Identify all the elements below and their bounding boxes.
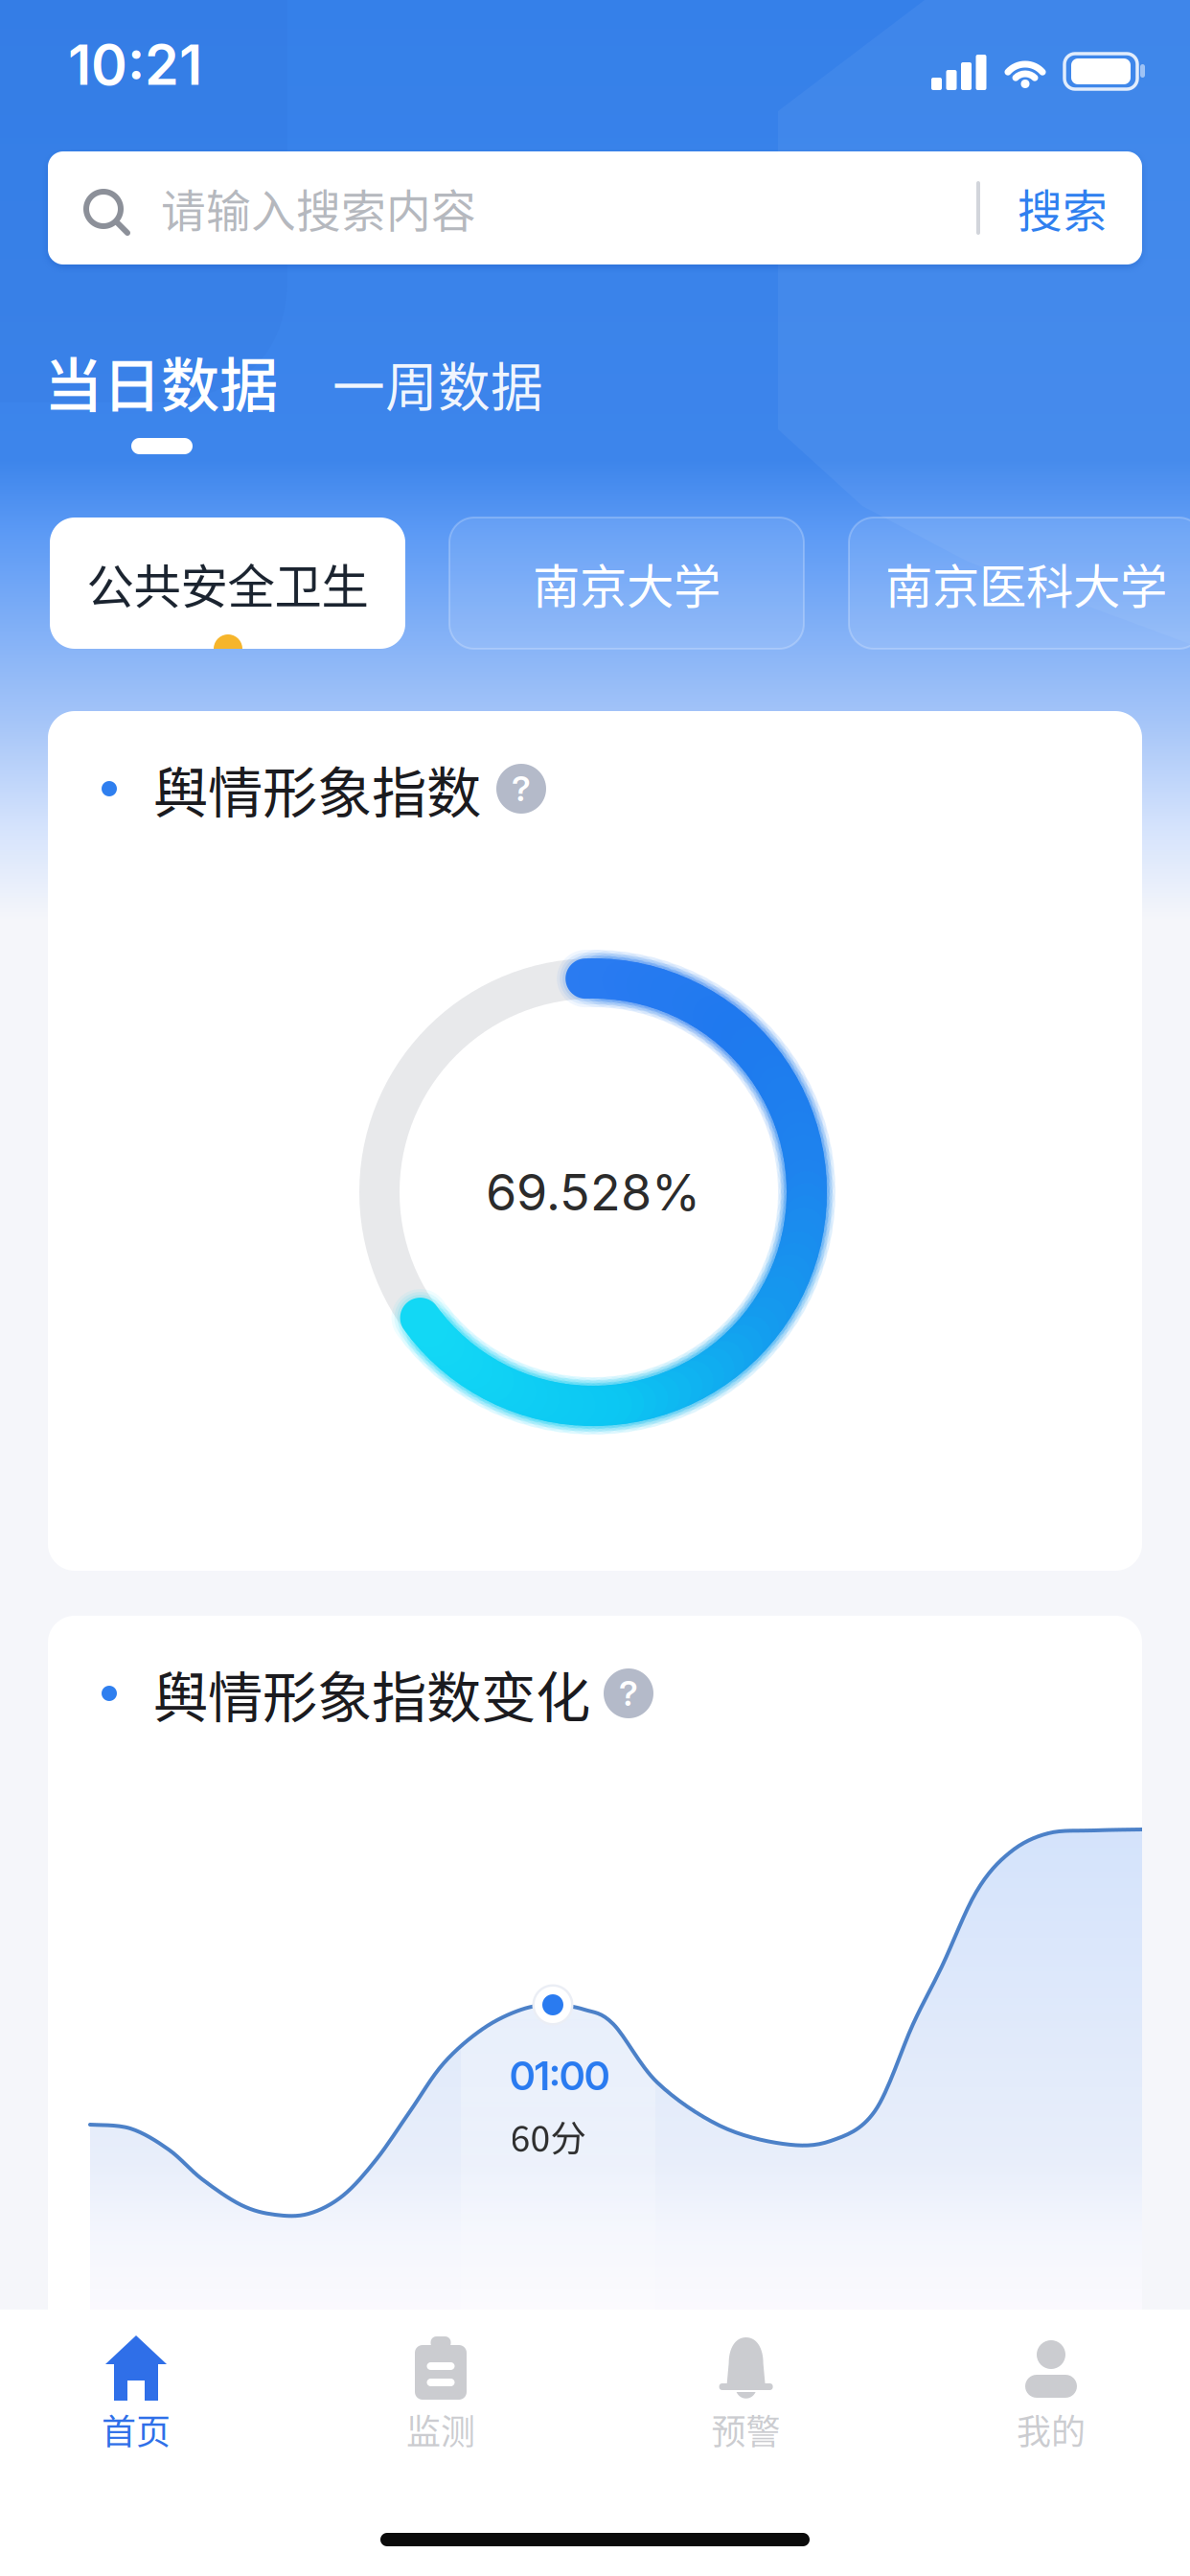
staticText: 预警 <box>712 2404 780 2454</box>
button[interactable]: 南京医科大学 <box>849 517 1190 649</box>
button[interactable]: 南京大学 <box>449 517 804 649</box>
button[interactable]: 预警 <box>631 2334 861 2459</box>
staticText: 搜索 <box>1018 176 1108 240</box>
staticText: 南京大学 <box>533 549 721 617</box>
button[interactable]: 当日数据 <box>44 341 293 422</box>
button[interactable]: 我的 <box>936 2334 1166 2459</box>
button[interactable]: 公共安全卫生 <box>50 517 405 649</box>
staticText: 当日数据 <box>44 339 278 424</box>
button[interactable]: 说明 <box>604 1668 653 1718</box>
staticText: 舆情形象指数 <box>153 749 481 828</box>
button[interactable]: 监测 <box>326 2334 556 2459</box>
staticText: 公共安全卫生 <box>87 549 368 617</box>
button[interactable]: 搜索框 <box>48 151 1142 264</box>
staticText: 监测 <box>406 2404 475 2454</box>
button[interactable]: 说明 <box>496 764 546 814</box>
staticText: 首页 <box>102 2404 171 2454</box>
staticText: 我的 <box>1017 2404 1086 2454</box>
staticText: ? <box>619 1672 638 1714</box>
staticText: ? <box>512 768 531 810</box>
staticText: 南京医科大学 <box>885 549 1167 617</box>
staticText: 舆情形象指数变化 <box>153 1654 590 1733</box>
staticText: 请输入搜索内容 <box>161 176 476 240</box>
staticText: 60分 <box>510 2110 586 2162</box>
staticText: 01:00 <box>510 2052 609 2100</box>
staticText: 10:21 <box>68 32 202 98</box>
staticText: 69.528% <box>486 1162 700 1222</box>
button[interactable]: 一周数据 <box>332 343 572 424</box>
staticText: 一周数据 <box>332 345 543 421</box>
button[interactable]: 首页 <box>21 2334 251 2459</box>
